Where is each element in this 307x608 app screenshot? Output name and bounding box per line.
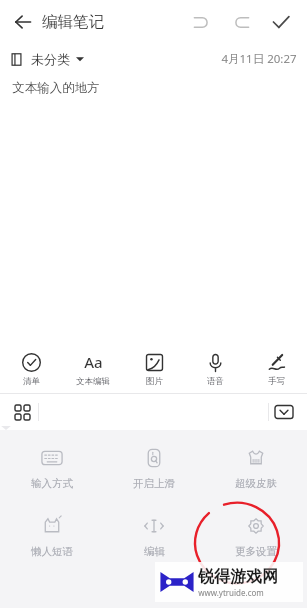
button[interactable]: 更多设置 xyxy=(205,514,307,558)
button[interactable]: 编辑 xyxy=(103,514,205,558)
button[interactable]: Redo xyxy=(221,2,261,42)
button[interactable]: Keyboard panel xyxy=(6,396,38,428)
staticText: Aa xyxy=(84,352,103,372)
staticText: 超级皮肤 xyxy=(235,477,277,490)
button[interactable]: 语音 xyxy=(185,351,246,387)
staticText: 懒人短语 xyxy=(31,545,73,558)
button[interactable]: 未分类 xyxy=(10,51,84,67)
button[interactable]: 开启上滑 xyxy=(103,446,205,490)
staticText: 4月11日 20:27 xyxy=(221,51,297,67)
staticText: 语音 xyxy=(207,376,224,387)
staticText: 清单 xyxy=(23,376,40,387)
button[interactable]: 输入方式 xyxy=(0,446,103,490)
staticText: 更多设置 xyxy=(235,545,277,558)
staticText: 图片 xyxy=(146,376,163,387)
staticText: 输入方式 xyxy=(31,477,73,490)
staticText: 文本编辑 xyxy=(76,376,110,387)
staticText: 手写 xyxy=(268,376,285,387)
staticText: www.ytruide.com xyxy=(198,587,264,598)
staticText: 编辑笔记 xyxy=(42,12,104,32)
button[interactable]: 图片 xyxy=(124,351,185,387)
button[interactable]: 手写 xyxy=(246,351,307,387)
staticText: 编辑 xyxy=(144,545,165,558)
button[interactable]: 懒人短语 xyxy=(0,514,103,558)
staticText: 未分类 xyxy=(31,51,70,67)
button[interactable]: Collapse panel xyxy=(269,397,299,427)
staticText: 锐得游戏网 xyxy=(198,567,278,587)
button[interactable]: Back xyxy=(6,5,40,39)
button[interactable]: Aa xyxy=(62,351,124,387)
button[interactable]: Save xyxy=(261,2,301,42)
button[interactable]: 清单 xyxy=(0,351,62,387)
staticText: 文本输入的地方 xyxy=(12,80,100,96)
button[interactable]: Undo xyxy=(181,2,221,42)
button[interactable]: 超级皮肤 xyxy=(205,446,307,490)
staticText: 开启上滑 xyxy=(133,477,175,490)
